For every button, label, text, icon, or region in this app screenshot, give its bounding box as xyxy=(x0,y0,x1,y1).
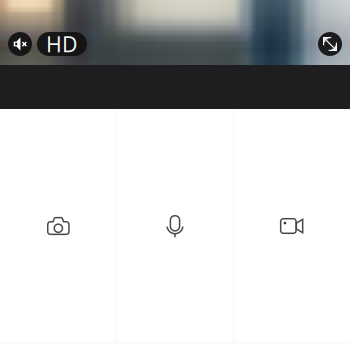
button[interactable]: Record xyxy=(233,109,350,350)
button[interactable]: Snapshot xyxy=(0,109,117,350)
button[interactable]: HD xyxy=(37,32,87,56)
button[interactable]: Unmute xyxy=(8,32,32,56)
staticText: HD xyxy=(46,30,78,58)
button[interactable]: Talk xyxy=(117,109,233,350)
button[interactable]: Full screen xyxy=(318,32,342,56)
